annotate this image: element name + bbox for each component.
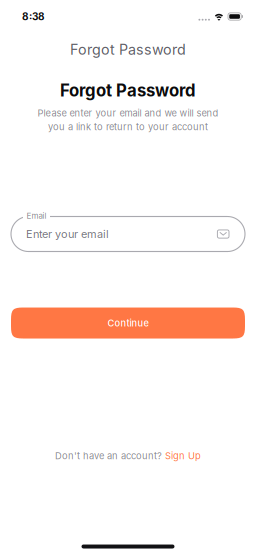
staticText: 8:38	[22, 10, 45, 23]
staticText: Don't have an account?	[55, 450, 162, 461]
staticText: Forgot Password	[60, 80, 196, 100]
button[interactable]: Sign Up	[165, 450, 201, 461]
staticText: Email	[26, 211, 46, 221]
staticText: Enter your email	[26, 227, 109, 241]
staticText: Continue	[107, 317, 148, 329]
staticText: Please enter your email and we will send	[37, 107, 218, 119]
button[interactable]: Continue	[11, 307, 245, 338]
staticText: Sign Up	[165, 450, 201, 461]
button[interactable]: Email, Enter your email	[11, 216, 245, 251]
staticText: Forgot Password	[70, 41, 186, 58]
staticText: you a link to return to your account	[48, 121, 208, 132]
